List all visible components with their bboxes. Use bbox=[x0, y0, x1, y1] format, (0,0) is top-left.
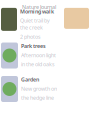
staticText: the hedge line bbox=[21, 94, 54, 101]
staticText: Quiet trail by the creek bbox=[20, 17, 50, 31]
staticText: Nature Journal bbox=[22, 3, 56, 11]
staticText: New growth on bbox=[21, 85, 57, 92]
staticText: Morning walk bbox=[20, 8, 54, 15]
staticText: 2 photos bbox=[20, 33, 41, 40]
staticText: in the old oaks bbox=[21, 61, 55, 68]
staticText: Afternoon light bbox=[21, 52, 56, 59]
staticText: Park trees bbox=[21, 42, 46, 50]
staticText: Garden bbox=[21, 76, 39, 83]
